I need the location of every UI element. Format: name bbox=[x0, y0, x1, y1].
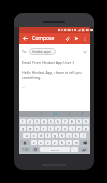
staticText: e bbox=[36, 127, 38, 131]
button[interactable]: e bbox=[34, 126, 40, 131]
staticText: f bbox=[47, 134, 49, 138]
button[interactable]: the bbox=[48, 111, 62, 117]
button[interactable]: Emoji bbox=[32, 147, 39, 152]
button[interactable]: z bbox=[31, 140, 37, 145]
staticText: 3 bbox=[36, 120, 38, 124]
staticText: 9 bbox=[78, 120, 80, 124]
staticText: m bbox=[75, 141, 78, 145]
button[interactable]: j bbox=[66, 133, 72, 138]
staticText: p bbox=[85, 127, 87, 131]
button[interactable]: Attach file bbox=[63, 34, 72, 43]
staticText: z bbox=[33, 141, 35, 145]
staticText: hindavi.apps@gmail.com bbox=[32, 50, 53, 54]
button[interactable]: b bbox=[59, 140, 65, 145]
button[interactable]: t bbox=[48, 126, 54, 131]
button[interactable]: . bbox=[71, 147, 78, 152]
staticText: 4 bbox=[43, 120, 45, 124]
button[interactable]: Shift bbox=[20, 140, 30, 145]
staticText: h bbox=[61, 134, 63, 138]
button[interactable]: r bbox=[41, 126, 47, 131]
button[interactable]: 1 bbox=[20, 119, 26, 124]
button[interactable]: Send bbox=[72, 34, 81, 43]
staticText: a bbox=[26, 134, 28, 138]
button[interactable]: Enter bbox=[79, 147, 89, 152]
staticText: 6 bbox=[57, 120, 59, 124]
staticText: 5 bbox=[50, 120, 52, 124]
button[interactable]: c bbox=[45, 140, 51, 145]
button[interactable]: l bbox=[80, 133, 86, 138]
button[interactable]: a bbox=[23, 133, 30, 138]
button[interactable]: 3 bbox=[34, 119, 40, 124]
button[interactable]: w bbox=[27, 126, 33, 131]
staticText: x bbox=[40, 141, 42, 145]
button[interactable]: 5 bbox=[48, 119, 54, 124]
button[interactable]: f bbox=[45, 133, 51, 138]
staticText: k bbox=[75, 134, 77, 138]
staticText: d bbox=[40, 134, 42, 138]
staticText: ? bbox=[82, 112, 84, 116]
button[interactable]: i bbox=[69, 126, 75, 131]
staticText: ?123 bbox=[23, 148, 29, 152]
button[interactable]: 6 bbox=[55, 119, 61, 124]
button[interactable]: Back bbox=[21, 34, 30, 43]
staticText: 7 bbox=[64, 120, 66, 124]
staticText: the bbox=[53, 112, 58, 116]
button[interactable]: 9 bbox=[76, 119, 82, 124]
staticText: n bbox=[68, 141, 70, 145]
staticText: q bbox=[22, 127, 24, 131]
button[interactable]: To: bbox=[22, 47, 87, 56]
button[interactable]: 0 bbox=[83, 119, 89, 124]
staticText: . bbox=[26, 112, 27, 116]
staticText: Compose bbox=[32, 35, 55, 42]
button[interactable]: s bbox=[31, 133, 37, 138]
button[interactable]: n bbox=[66, 140, 72, 145]
staticText: w bbox=[29, 127, 32, 131]
staticText: r bbox=[43, 127, 45, 131]
button[interactable]: q bbox=[20, 126, 26, 131]
button[interactable]: 4 bbox=[41, 119, 47, 124]
button[interactable]: ? bbox=[76, 111, 90, 117]
staticText: u bbox=[64, 127, 66, 131]
staticText: ... bbox=[22, 84, 25, 89]
button[interactable]: p bbox=[83, 126, 89, 131]
staticText: l bbox=[83, 134, 84, 138]
button[interactable]: I bbox=[34, 111, 48, 117]
staticText: g bbox=[54, 134, 56, 138]
staticText: i bbox=[69, 112, 70, 116]
staticText: s bbox=[33, 134, 35, 138]
staticText: English bbox=[51, 148, 60, 151]
button[interactable]: Email From Hindavi App User :) bbox=[22, 60, 75, 65]
button[interactable]: k bbox=[73, 133, 79, 138]
staticText: t bbox=[50, 127, 52, 131]
staticText: . bbox=[74, 148, 75, 152]
button[interactable]: u bbox=[62, 126, 68, 131]
staticText: 0 bbox=[85, 120, 87, 124]
staticText: v bbox=[54, 141, 56, 145]
staticText: 1 bbox=[22, 120, 24, 124]
button[interactable]: Backspace bbox=[80, 140, 89, 145]
button[interactable]: 2 bbox=[27, 119, 33, 124]
button[interactable]: h bbox=[59, 133, 65, 138]
button[interactable]: d bbox=[38, 133, 44, 138]
button[interactable]: Space bbox=[40, 147, 70, 152]
button[interactable]: o bbox=[76, 126, 82, 131]
button[interactable]: v bbox=[52, 140, 58, 145]
staticText: 8 bbox=[71, 120, 73, 124]
button[interactable]: m bbox=[73, 140, 79, 145]
staticText: I bbox=[41, 112, 42, 116]
button[interactable]: y bbox=[55, 126, 61, 131]
staticText: i bbox=[72, 127, 73, 131]
staticText: b bbox=[61, 141, 63, 145]
button[interactable]: 8 bbox=[69, 119, 75, 124]
button[interactable]: Symbols bbox=[20, 147, 31, 152]
button[interactable]: Hello Hindavi App, i have to tell you so… bbox=[22, 70, 87, 80]
staticText: 2 bbox=[29, 120, 31, 124]
button[interactable]: x bbox=[38, 140, 44, 145]
button[interactable]: 7 bbox=[62, 119, 68, 124]
staticText: y bbox=[57, 127, 59, 131]
button[interactable]: g bbox=[52, 133, 58, 138]
staticText: To: bbox=[22, 49, 27, 54]
button[interactable]: More options bbox=[81, 35, 88, 42]
